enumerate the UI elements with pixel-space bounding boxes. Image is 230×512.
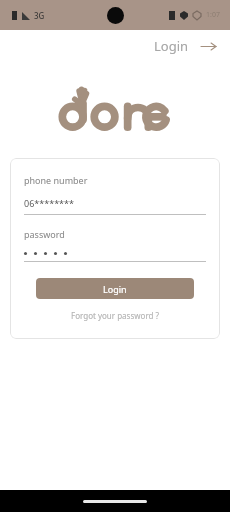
staticText: 3G xyxy=(34,10,45,21)
staticText: phone number xyxy=(24,174,88,186)
button[interactable]: Forgot your password ? xyxy=(65,308,166,323)
staticText: 1:07 xyxy=(206,10,220,20)
button[interactable]: Login xyxy=(150,33,220,59)
button[interactable] xyxy=(24,252,206,255)
button[interactable]: Home gesture bar xyxy=(83,500,147,503)
staticText: Forgot your password ? xyxy=(71,310,160,321)
button[interactable]: Login xyxy=(36,278,194,299)
other: Continue xyxy=(201,39,216,54)
staticText: password xyxy=(24,228,65,240)
button[interactable]: 06******** xyxy=(24,197,206,209)
other: done logo xyxy=(60,86,170,130)
staticText: Login xyxy=(154,37,189,55)
staticText: 06******** xyxy=(24,197,74,209)
staticText: Login xyxy=(103,283,127,295)
